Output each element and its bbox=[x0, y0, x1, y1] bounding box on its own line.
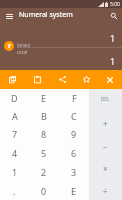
staticText: 5:00 bbox=[110, 1, 120, 8]
button[interactable]: DEL bbox=[89, 89, 122, 112]
button[interactable]: + bbox=[89, 112, 122, 134]
button[interactable]: A bbox=[0, 107, 29, 125]
button[interactable]: 9 bbox=[59, 125, 89, 143]
staticText: − bbox=[103, 141, 108, 152]
staticText: A bbox=[12, 110, 18, 122]
staticText: × bbox=[103, 163, 108, 174]
button[interactable]: Clear bbox=[98, 70, 122, 89]
staticText: + bbox=[103, 118, 108, 129]
staticText: 5 bbox=[41, 147, 47, 159]
staticText: 6 bbox=[71, 147, 77, 159]
button[interactable]: − bbox=[89, 134, 122, 156]
button[interactable]: B bbox=[29, 107, 59, 125]
button[interactable]: 8 bbox=[29, 125, 59, 143]
staticText: 0 bbox=[41, 185, 47, 197]
staticText: 4 bbox=[12, 147, 18, 159]
staticText: Numeral system bbox=[19, 10, 73, 20]
button[interactable]: C bbox=[59, 107, 89, 125]
staticText: E bbox=[41, 92, 47, 104]
button[interactable]: Open navigation drawer bbox=[0, 8, 19, 22]
staticText: 7 bbox=[12, 128, 18, 140]
staticText: 9 bbox=[71, 128, 77, 140]
button[interactable]: E bbox=[29, 89, 59, 107]
button[interactable]: . bbox=[0, 181, 29, 200]
button[interactable]: 1 bbox=[0, 162, 29, 181]
staticText: 1 bbox=[110, 32, 116, 44]
staticText: . bbox=[13, 185, 16, 197]
button[interactable]: F bbox=[59, 89, 89, 107]
button[interactable]: D bbox=[0, 89, 29, 107]
button[interactable]: Share bbox=[50, 70, 74, 89]
staticText: 8 bbox=[41, 128, 47, 140]
button[interactable]: 3 bbox=[59, 162, 89, 181]
button[interactable]: 5 bbox=[29, 143, 59, 162]
staticText: B bbox=[41, 110, 47, 122]
button[interactable]: Paste bbox=[25, 70, 50, 89]
staticText: ÷ bbox=[103, 185, 108, 196]
staticText: f bbox=[8, 42, 11, 50]
button[interactable]: Search bbox=[106, 8, 122, 22]
button[interactable]: 7 bbox=[0, 125, 29, 143]
button[interactable]: E bbox=[59, 181, 89, 200]
staticText: DEL bbox=[101, 96, 110, 102]
staticText: 3 bbox=[71, 166, 77, 178]
staticText: binary bbox=[17, 42, 31, 48]
button[interactable]: 0 bbox=[29, 181, 59, 200]
staticText: octal bbox=[17, 49, 28, 55]
button[interactable]: Copy bbox=[0, 70, 25, 89]
button[interactable]: × bbox=[89, 156, 122, 178]
staticText: C bbox=[71, 110, 77, 122]
staticText: D bbox=[11, 92, 18, 104]
staticText: 2 bbox=[41, 166, 47, 178]
button[interactable]: ÷ bbox=[89, 178, 122, 200]
button[interactable]: Favorite bbox=[74, 70, 98, 89]
button[interactable]: 6 bbox=[59, 143, 89, 162]
button[interactable]: 4 bbox=[0, 143, 29, 162]
staticText: F bbox=[72, 92, 77, 104]
staticText: 1 bbox=[110, 55, 116, 67]
staticText: E bbox=[71, 185, 77, 197]
button[interactable]: 2 bbox=[29, 162, 59, 181]
staticText: 1 bbox=[12, 166, 18, 178]
button[interactable]: f bbox=[4, 41, 14, 51]
